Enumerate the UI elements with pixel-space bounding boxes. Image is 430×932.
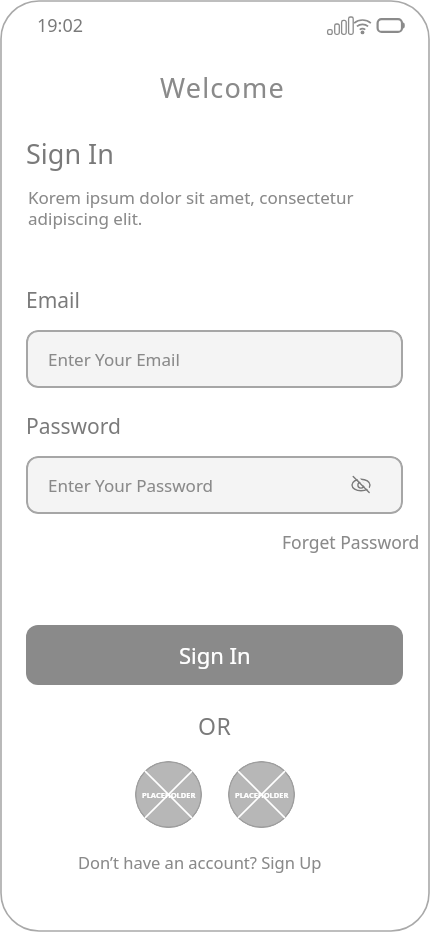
button[interactable] <box>347 471 375 499</box>
staticText: Sign In <box>179 640 251 670</box>
staticText: OR <box>198 710 232 741</box>
staticText: PLACEHOLDER <box>142 790 196 800</box>
staticText: Enter Your Email <box>48 348 180 371</box>
button[interactable]: Enter Your Password <box>26 456 403 514</box>
staticText: Enter Your Password <box>48 474 214 497</box>
staticText: Welcome <box>160 69 285 106</box>
staticText: Sign In <box>26 135 114 172</box>
button[interactable]: Enter Your Email <box>26 330 403 388</box>
staticText: Korem ipsum dolor sit amet, consectetur … <box>28 186 354 230</box>
staticText: PLACEHOLDER <box>235 790 289 800</box>
button[interactable]: Don’t have an account? Sign Up <box>78 851 322 873</box>
staticText: 19:02 <box>37 13 84 38</box>
staticText: Password <box>26 412 121 441</box>
button[interactable]: PLACEHOLDER <box>228 761 295 828</box>
button[interactable]: PLACEHOLDER <box>135 761 202 828</box>
button[interactable]: Sign In <box>26 625 403 685</box>
staticText: Don’t have an account? Sign Up <box>78 851 322 873</box>
button[interactable]: Forget Password <box>282 530 420 554</box>
staticText: Email <box>26 286 80 315</box>
staticText: Forget Password <box>282 530 420 554</box>
